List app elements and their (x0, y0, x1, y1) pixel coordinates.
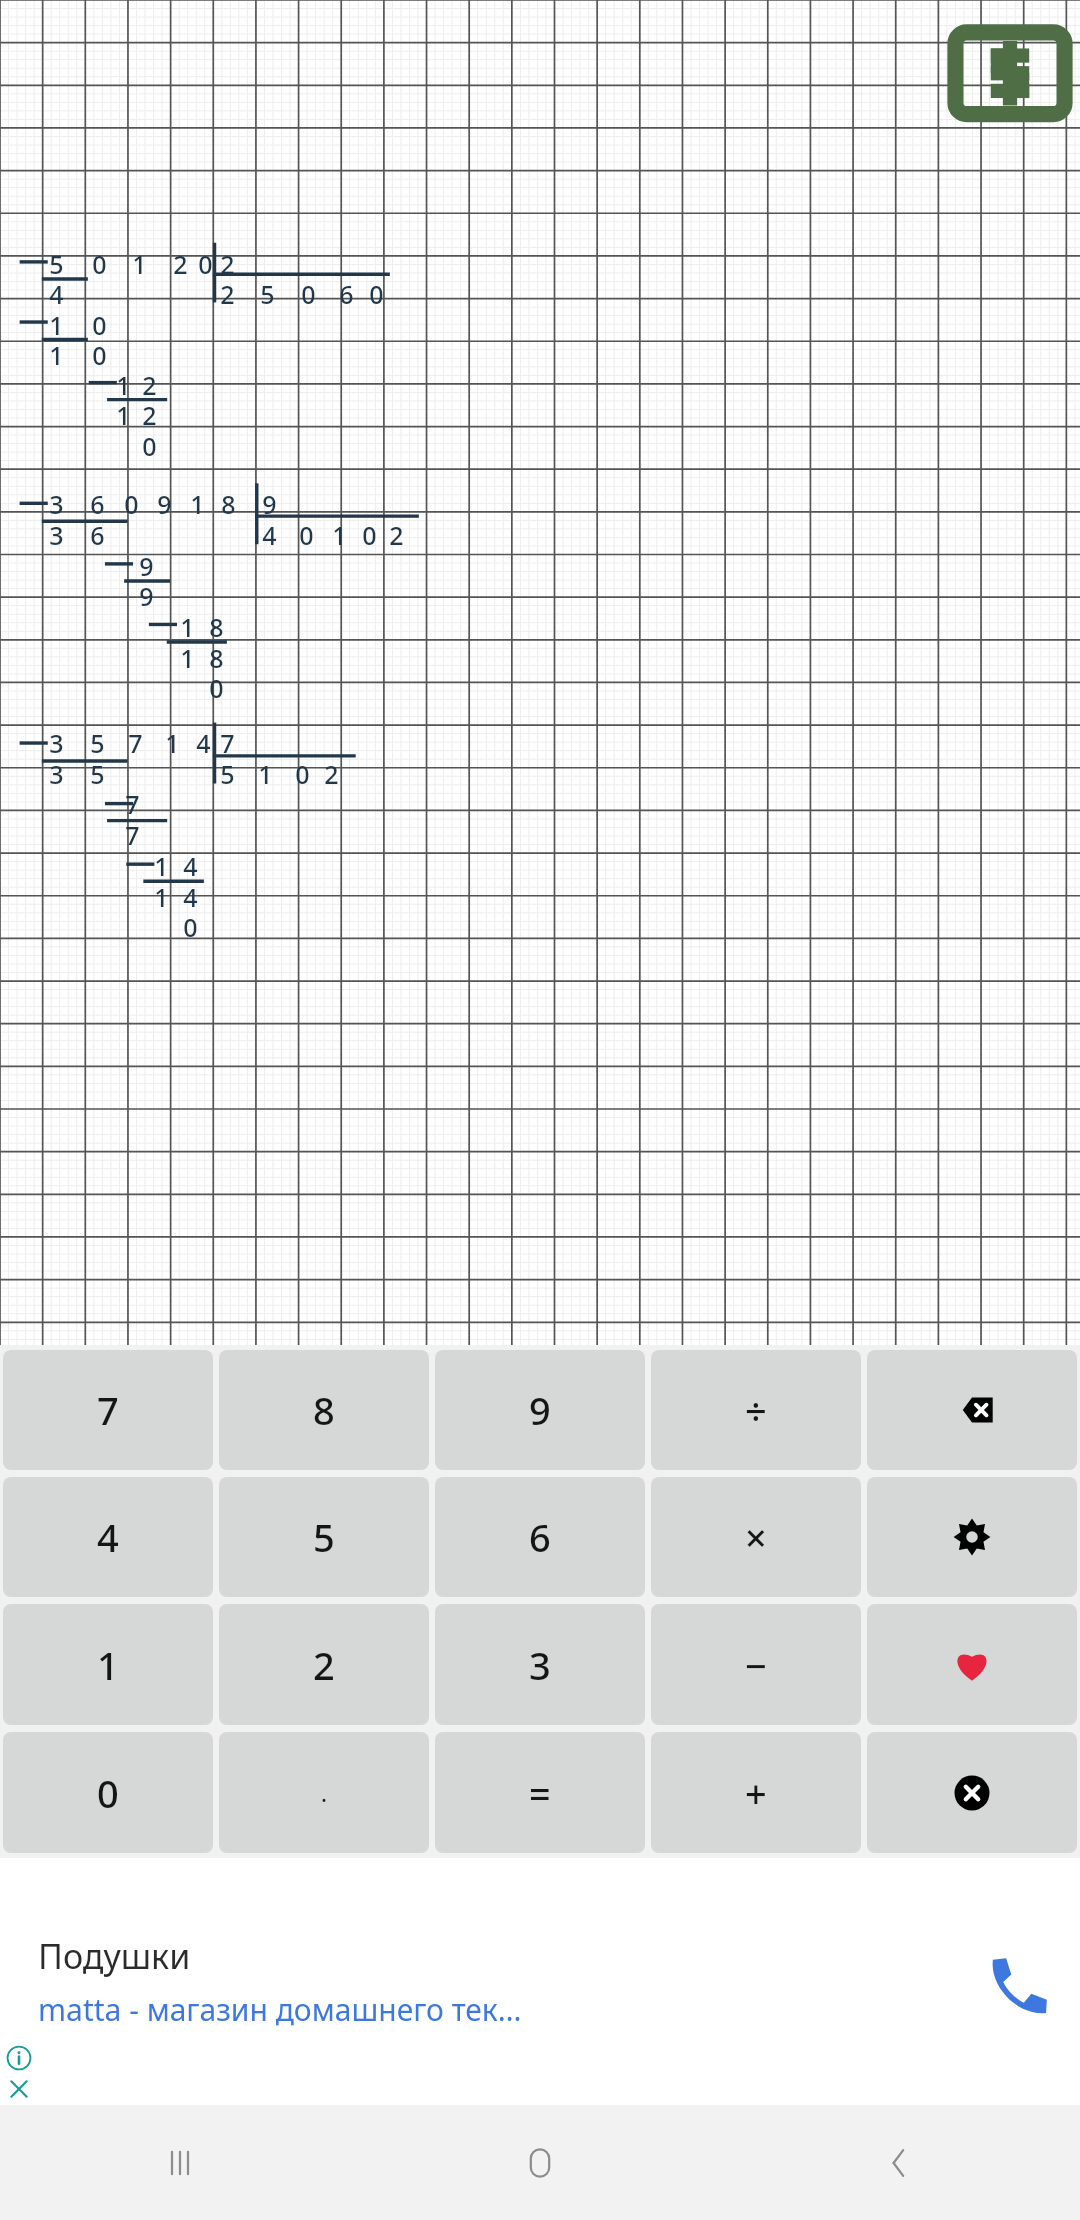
staticText: . (321, 1778, 327, 1808)
staticText: 1 (180, 610, 195, 644)
staticText: 1 (332, 518, 347, 552)
staticText: 9 (139, 579, 154, 613)
button[interactable]: Remove ads (948, 10, 1072, 134)
staticText: 4 (49, 277, 64, 311)
button[interactable]: ÷ (651, 1350, 861, 1470)
staticText: 7 (125, 818, 140, 852)
staticText: 0 (124, 487, 139, 521)
staticText: 4 (196, 726, 211, 760)
staticText: Подушки (38, 1933, 191, 1979)
staticText: matta - магазин домашнего тек… (38, 1989, 522, 2030)
staticText: 3 (529, 1639, 551, 1691)
staticText: 6 (90, 518, 105, 552)
staticText: 1 (165, 726, 180, 760)
button[interactable]: = (435, 1732, 645, 1853)
staticText: 0 (92, 247, 107, 281)
staticText: 0 (295, 757, 310, 791)
staticText: 4 (262, 518, 277, 552)
button[interactable]: Close ad (0, 1858, 1080, 2105)
button[interactable]: 2 (219, 1604, 429, 1725)
staticText: 3 (49, 757, 64, 791)
staticText: 6 (529, 1511, 551, 1563)
button[interactable]: Settings (867, 1477, 1077, 1597)
staticText: 4 (183, 849, 198, 883)
staticText: 1 (180, 641, 195, 675)
staticText: 0 (301, 277, 316, 311)
staticText: 9 (157, 487, 172, 521)
button[interactable]: 1 (3, 1604, 213, 1725)
staticText: 3 (49, 726, 64, 760)
staticText: 0 (142, 429, 157, 463)
button[interactable]: Call (950, 1858, 1080, 2105)
button[interactable]: Back (720, 2105, 1080, 2220)
staticText: 7 (97, 1384, 119, 1436)
button[interactable]: 0 (3, 1732, 213, 1853)
staticText: 1 (49, 338, 64, 372)
staticText: 7 (220, 726, 235, 760)
staticText: 2 (142, 398, 157, 432)
staticText: 5 (90, 726, 105, 760)
staticText: 5 (220, 757, 235, 791)
staticText: 5 (49, 247, 64, 281)
button[interactable]: 8 (219, 1350, 429, 1470)
staticText: 6 (90, 487, 105, 521)
staticText: 1 (154, 880, 169, 914)
button[interactable]: + (651, 1732, 861, 1853)
staticText: 2 (173, 247, 188, 281)
staticText: 3 (49, 518, 64, 552)
staticText: 7 (125, 787, 140, 821)
staticText: 0 (92, 308, 107, 342)
button[interactable]: 7 (3, 1350, 213, 1470)
staticText: 9 (262, 487, 277, 521)
staticText: 4 (97, 1511, 119, 1563)
button[interactable]: Home (360, 2105, 720, 2220)
staticText: 9 (139, 549, 154, 583)
staticText: 8 (209, 610, 224, 644)
button[interactable]: 9 (435, 1350, 645, 1470)
staticText: 1 (116, 368, 131, 402)
staticText: ÷ (745, 1384, 767, 1436)
staticText: = (529, 1767, 551, 1819)
staticText: 0 (183, 910, 198, 944)
staticText: 9 (529, 1384, 551, 1436)
button[interactable]: 5 (219, 1477, 429, 1597)
button[interactable]: 6 (435, 1477, 645, 1597)
staticText: 8 (209, 641, 224, 675)
staticText: 0 (92, 338, 107, 372)
button[interactable]: Recent apps (0, 2105, 360, 2220)
staticText: 1 (154, 849, 169, 883)
other: Close ad (7, 2077, 31, 2101)
staticText: 0 (362, 518, 377, 552)
staticText: 0 (198, 247, 213, 281)
button[interactable]: × (651, 1477, 861, 1597)
staticText: 2 (389, 518, 404, 552)
staticText: 2 (324, 757, 339, 791)
staticText: 7 (128, 726, 143, 760)
button[interactable]: Backspace (867, 1350, 1077, 1470)
staticText: 5 (313, 1511, 335, 1563)
staticText: × (745, 1511, 767, 1563)
staticText: 0 (299, 518, 314, 552)
staticText: 2 (313, 1639, 335, 1691)
staticText: 1 (116, 398, 131, 432)
staticText: 0 (369, 277, 384, 311)
staticText: 1 (190, 487, 205, 521)
button[interactable]: 3 (435, 1604, 645, 1725)
staticText: 0 (209, 671, 224, 705)
staticText: 2 (142, 368, 157, 402)
button[interactable]: 4 (3, 1477, 213, 1597)
staticText: + (745, 1767, 767, 1819)
staticText: 5 (260, 277, 275, 311)
staticText: 5 (90, 757, 105, 791)
staticText: 1 (258, 757, 273, 791)
staticText: 0 (97, 1767, 119, 1819)
staticText: 1 (49, 308, 64, 342)
staticText: 2 (220, 247, 235, 281)
staticText: 8 (221, 487, 236, 521)
button[interactable]: − (651, 1604, 861, 1725)
staticText: 1 (97, 1639, 119, 1691)
staticText: 4 (183, 880, 198, 914)
button[interactable]: Favorite (867, 1604, 1077, 1725)
button[interactable]: Clear (867, 1732, 1077, 1853)
